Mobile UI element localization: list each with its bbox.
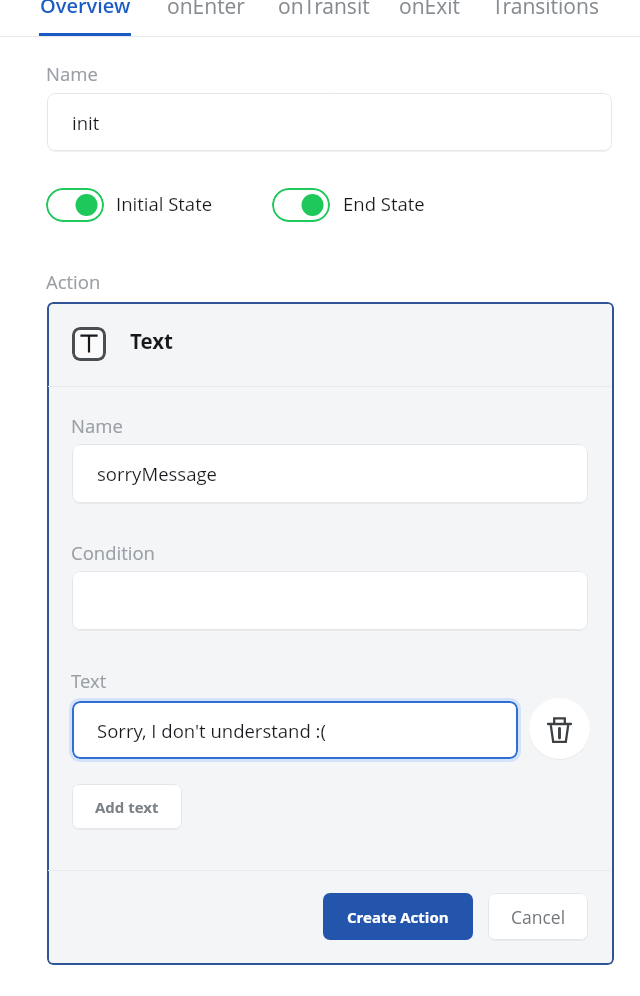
staticText: Action: [46, 269, 101, 294]
staticText: Text: [71, 668, 107, 693]
staticText: Add text: [95, 797, 159, 817]
button[interactable]: End State toggle: [272, 188, 330, 222]
button[interactable]: init: [47, 93, 612, 151]
button[interactable]: Sorry, I don't understand :(: [72, 701, 518, 759]
button[interactable]: Transitions: [492, 0, 599, 21]
staticText: Create Action: [347, 907, 449, 927]
button[interactable]: onTransit: [278, 0, 370, 21]
staticText: init: [72, 110, 100, 135]
button[interactable]: onExit: [399, 0, 460, 21]
button[interactable]: Initial State: [116, 191, 213, 216]
button[interactable]: Overview: [40, 0, 131, 19]
staticText: Name: [46, 61, 98, 86]
button[interactable]: onEnter: [167, 0, 245, 21]
staticText: Text: [130, 327, 173, 355]
button[interactable]: [72, 571, 588, 630]
staticText: Cancel: [511, 905, 566, 929]
button[interactable]: sorryMessage: [72, 444, 588, 503]
button[interactable]: End State: [343, 191, 425, 216]
button[interactable]: Initial State toggle: [46, 188, 104, 222]
button[interactable]: Text action type: [72, 327, 106, 361]
staticText: Condition: [71, 540, 155, 565]
button[interactable]: Cancel: [488, 893, 588, 940]
staticText: sorryMessage: [97, 461, 217, 486]
button[interactable]: Delete: [529, 698, 590, 759]
button[interactable]: Create Action: [323, 893, 473, 940]
staticText: Name: [71, 413, 123, 438]
staticText: Sorry, I don't understand :(: [97, 718, 326, 743]
button[interactable]: Add text: [72, 784, 182, 829]
